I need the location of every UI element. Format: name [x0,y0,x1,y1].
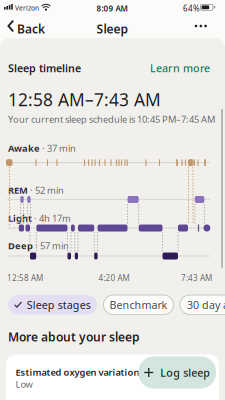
staticText: Estimated oxygen variation [15,366,139,378]
staticText: More about your sleep [8,329,140,345]
staticText: 8:09 AM [96,3,127,14]
button[interactable]: Learn more [0,0,210,14]
staticText: Sleep stages [27,298,91,312]
button[interactable]: Sleep stages [0,0,89,19]
staticText: Sleep timeline [8,61,81,75]
staticText: Log sleep [160,365,210,380]
button[interactable]: Estimated oxygen variation [0,0,213,60]
staticText: Benchmark [109,298,167,312]
staticText: · 4h 17m [32,212,71,224]
button[interactable]: Benchmark [0,0,70,19]
button[interactable]: Log sleep [0,0,77,32]
staticText: Verizon [15,3,39,12]
staticText: Awake [8,142,40,154]
staticText: 64% [183,3,200,14]
staticText: Back [17,21,45,37]
button[interactable]: Back [0,0,225,400]
staticText: 12:58 AM [7,272,43,283]
staticText: REM [8,184,28,196]
staticText: Low [15,378,32,390]
staticText: Sleep [96,21,128,37]
staticText: 12:58 AM–7:43 AM [8,88,161,111]
staticText: 7:43 AM [181,272,212,283]
button[interactable] [0,0,225,400]
staticText: Your current sleep schedule is 10:45 PM–… [8,113,215,125]
staticText: 30 day avg [187,298,225,312]
staticText: Deep [8,239,33,252]
staticText: · 57 min [33,239,69,252]
button[interactable]: 30 day avg [0,0,68,19]
staticText: · 52 min [28,184,64,196]
staticText: 4:20 AM [98,272,129,283]
staticText: Light [8,212,32,224]
staticText: Learn more [150,61,210,75]
staticText: · 37 min [40,142,76,154]
